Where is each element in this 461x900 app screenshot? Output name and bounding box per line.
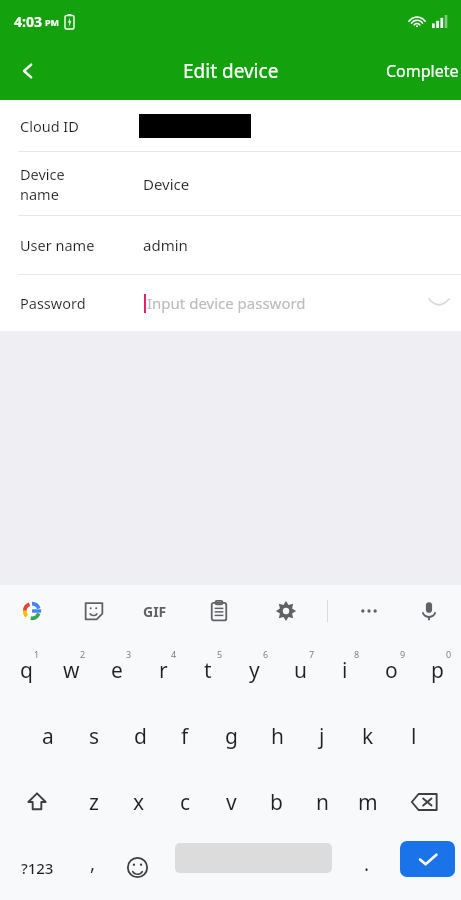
button[interactable]: x	[116, 769, 162, 835]
staticText: .	[364, 851, 370, 877]
button[interactable]: Cloud ID	[0, 100, 461, 151]
staticText: x	[133, 788, 145, 817]
button[interactable]: Google	[14, 593, 50, 629]
button[interactable]: l	[391, 703, 437, 769]
button[interactable]: More	[351, 593, 387, 629]
staticText: f	[181, 722, 189, 751]
staticText: Input device password	[147, 293, 306, 313]
staticText: 3	[126, 648, 132, 660]
button[interactable]: w	[48, 637, 94, 703]
button[interactable]: Shift	[8, 769, 66, 835]
staticText: g	[225, 722, 238, 751]
button[interactable]: g	[208, 703, 254, 769]
staticText: c	[180, 788, 191, 817]
staticText: Password	[20, 293, 86, 313]
button[interactable]: y	[231, 637, 277, 703]
button[interactable]: p	[414, 637, 460, 703]
staticText: PM	[45, 16, 60, 28]
button[interactable]: b	[253, 769, 299, 835]
staticText: 7	[309, 648, 315, 660]
staticText: e	[111, 656, 123, 685]
staticText: a	[42, 722, 54, 751]
button[interactable]: d	[117, 703, 163, 769]
staticText: l	[411, 722, 417, 751]
staticText: Device	[143, 174, 190, 194]
button[interactable]: a	[25, 703, 71, 769]
button[interactable]: Device	[0, 152, 461, 215]
staticText: r	[159, 656, 168, 685]
button[interactable]: Back	[0, 43, 56, 99]
staticText: v	[226, 788, 237, 817]
button[interactable]: z	[71, 769, 117, 835]
staticText: 8	[354, 648, 360, 660]
staticText: n	[316, 788, 329, 817]
button[interactable]: Settings	[268, 593, 304, 629]
button[interactable]: Stickers	[76, 593, 112, 629]
staticText: 2	[80, 648, 86, 660]
button[interactable]: Complete	[386, 60, 461, 82]
button[interactable]: k	[345, 703, 391, 769]
button[interactable]: m	[345, 769, 391, 835]
staticText: d	[134, 722, 147, 751]
staticText: admin	[143, 235, 188, 255]
staticText: 9	[400, 648, 406, 660]
staticText: 6	[263, 648, 269, 660]
staticText: ?123	[21, 858, 54, 878]
staticText: GIF	[143, 602, 167, 621]
staticText: 1	[34, 648, 40, 660]
button[interactable]: u	[277, 637, 323, 703]
button[interactable]: ?123	[6, 835, 68, 900]
button[interactable]: c	[162, 769, 208, 835]
button[interactable]: Clipboard	[201, 593, 237, 629]
staticText: p	[431, 656, 444, 685]
staticText: h	[271, 722, 284, 751]
button[interactable]: Show password	[417, 281, 461, 325]
staticText: Complete	[386, 60, 459, 82]
button[interactable]: GIF	[135, 591, 175, 631]
button[interactable]: Voice input	[411, 593, 447, 629]
button[interactable]: n	[299, 769, 345, 835]
button[interactable]: r	[140, 637, 186, 703]
staticText: m	[358, 788, 378, 817]
button[interactable]: h	[254, 703, 300, 769]
button[interactable]: q	[3, 637, 49, 703]
button[interactable]: i	[322, 637, 368, 703]
button[interactable]: Enter	[400, 841, 455, 877]
staticText: Cloud ID	[20, 116, 79, 136]
button[interactable]: Period	[345, 835, 389, 900]
staticText: 4:03	[14, 12, 42, 31]
staticText: i	[342, 656, 348, 685]
staticText: Device	[20, 164, 65, 184]
button[interactable]: e	[94, 637, 140, 703]
staticText: o	[385, 656, 398, 685]
staticText: w	[63, 656, 80, 685]
staticText: z	[89, 788, 99, 817]
staticText: s	[89, 722, 100, 751]
button[interactable]: s	[71, 703, 117, 769]
button[interactable]: Backspace	[395, 769, 453, 835]
button[interactable]: t	[185, 637, 231, 703]
staticText: t	[204, 656, 212, 685]
staticText: q	[20, 656, 33, 685]
staticText: 0	[446, 648, 452, 660]
staticText: Edit device	[183, 58, 279, 84]
button[interactable]: o	[368, 637, 414, 703]
button[interactable]: v	[208, 769, 254, 835]
staticText: b	[270, 788, 283, 817]
staticText: k	[362, 722, 374, 751]
staticText: 4	[171, 648, 177, 660]
staticText: User name	[20, 235, 95, 255]
staticText: name	[20, 184, 59, 204]
button[interactable]: Comma	[72, 835, 114, 900]
staticText: u	[294, 656, 307, 685]
button[interactable]: j	[299, 703, 345, 769]
button[interactable]: f	[162, 703, 208, 769]
staticText: 5	[217, 648, 223, 660]
button[interactable]: Password	[0, 275, 461, 331]
button[interactable]: User name	[0, 216, 461, 274]
staticText: ,	[90, 850, 96, 876]
button[interactable]: Emoji	[115, 835, 159, 900]
staticText: j	[319, 722, 325, 751]
staticText: y	[249, 656, 260, 685]
